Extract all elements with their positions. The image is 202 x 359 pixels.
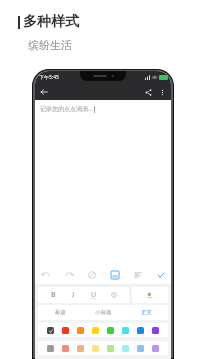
button[interactable]: Undo <box>39 268 52 281</box>
button[interactable]: Align <box>131 268 144 281</box>
button[interactable]: Color 6 <box>121 326 130 335</box>
button[interactable]: Share <box>142 86 155 99</box>
staticText: U <box>91 290 97 300</box>
button[interactable]: Color 4 <box>91 344 100 353</box>
button[interactable]: Color 8 <box>151 326 160 335</box>
button[interactable]: I <box>67 289 79 301</box>
button[interactable]: Color 5 <box>106 344 115 353</box>
button[interactable]: Color 6 <box>121 344 130 353</box>
button[interactable]: Emoji <box>85 268 98 281</box>
button[interactable]: 小标题 <box>82 305 125 320</box>
button[interactable]: 正文 <box>125 305 168 320</box>
staticText: 下午5:45 <box>39 74 59 81</box>
button[interactable]: Color 3 <box>76 326 85 335</box>
staticText: 小标题 <box>95 309 112 316</box>
button[interactable]: Color 5 <box>106 326 115 335</box>
button[interactable]: Insert image <box>108 268 121 281</box>
button[interactable]: Color 4 <box>91 326 100 335</box>
button[interactable]: 标题 <box>38 305 82 320</box>
staticText: 正文 <box>141 309 152 316</box>
button[interactable]: B <box>47 289 59 301</box>
button[interactable]: Color 2 <box>61 326 70 335</box>
button[interactable]: Color 7 <box>136 344 145 353</box>
staticText: 多种样式 <box>23 13 79 31</box>
button[interactable]: More options <box>156 86 169 99</box>
button[interactable]: Done <box>154 268 167 281</box>
button[interactable]: U <box>88 289 100 301</box>
button[interactable]: Color 7 <box>136 326 145 335</box>
button[interactable]: Color 1 <box>46 344 55 353</box>
button[interactable]: Back <box>37 85 51 99</box>
button[interactable]: Color 1 <box>46 326 55 335</box>
button[interactable]: Color 3 <box>76 344 85 353</box>
staticText: 缤纷生活 <box>28 38 72 52</box>
button[interactable]: Text color <box>132 287 168 303</box>
staticText: B <box>51 290 56 300</box>
staticText: 记录您的点点滴滴... <box>40 105 93 113</box>
button[interactable]: Highlight <box>108 289 120 301</box>
staticText: I <box>72 290 75 300</box>
staticText: 标题 <box>55 309 66 316</box>
button[interactable]: Color 8 <box>151 344 160 353</box>
button[interactable]: Color 2 <box>61 344 70 353</box>
button[interactable]: Redo <box>62 268 75 281</box>
